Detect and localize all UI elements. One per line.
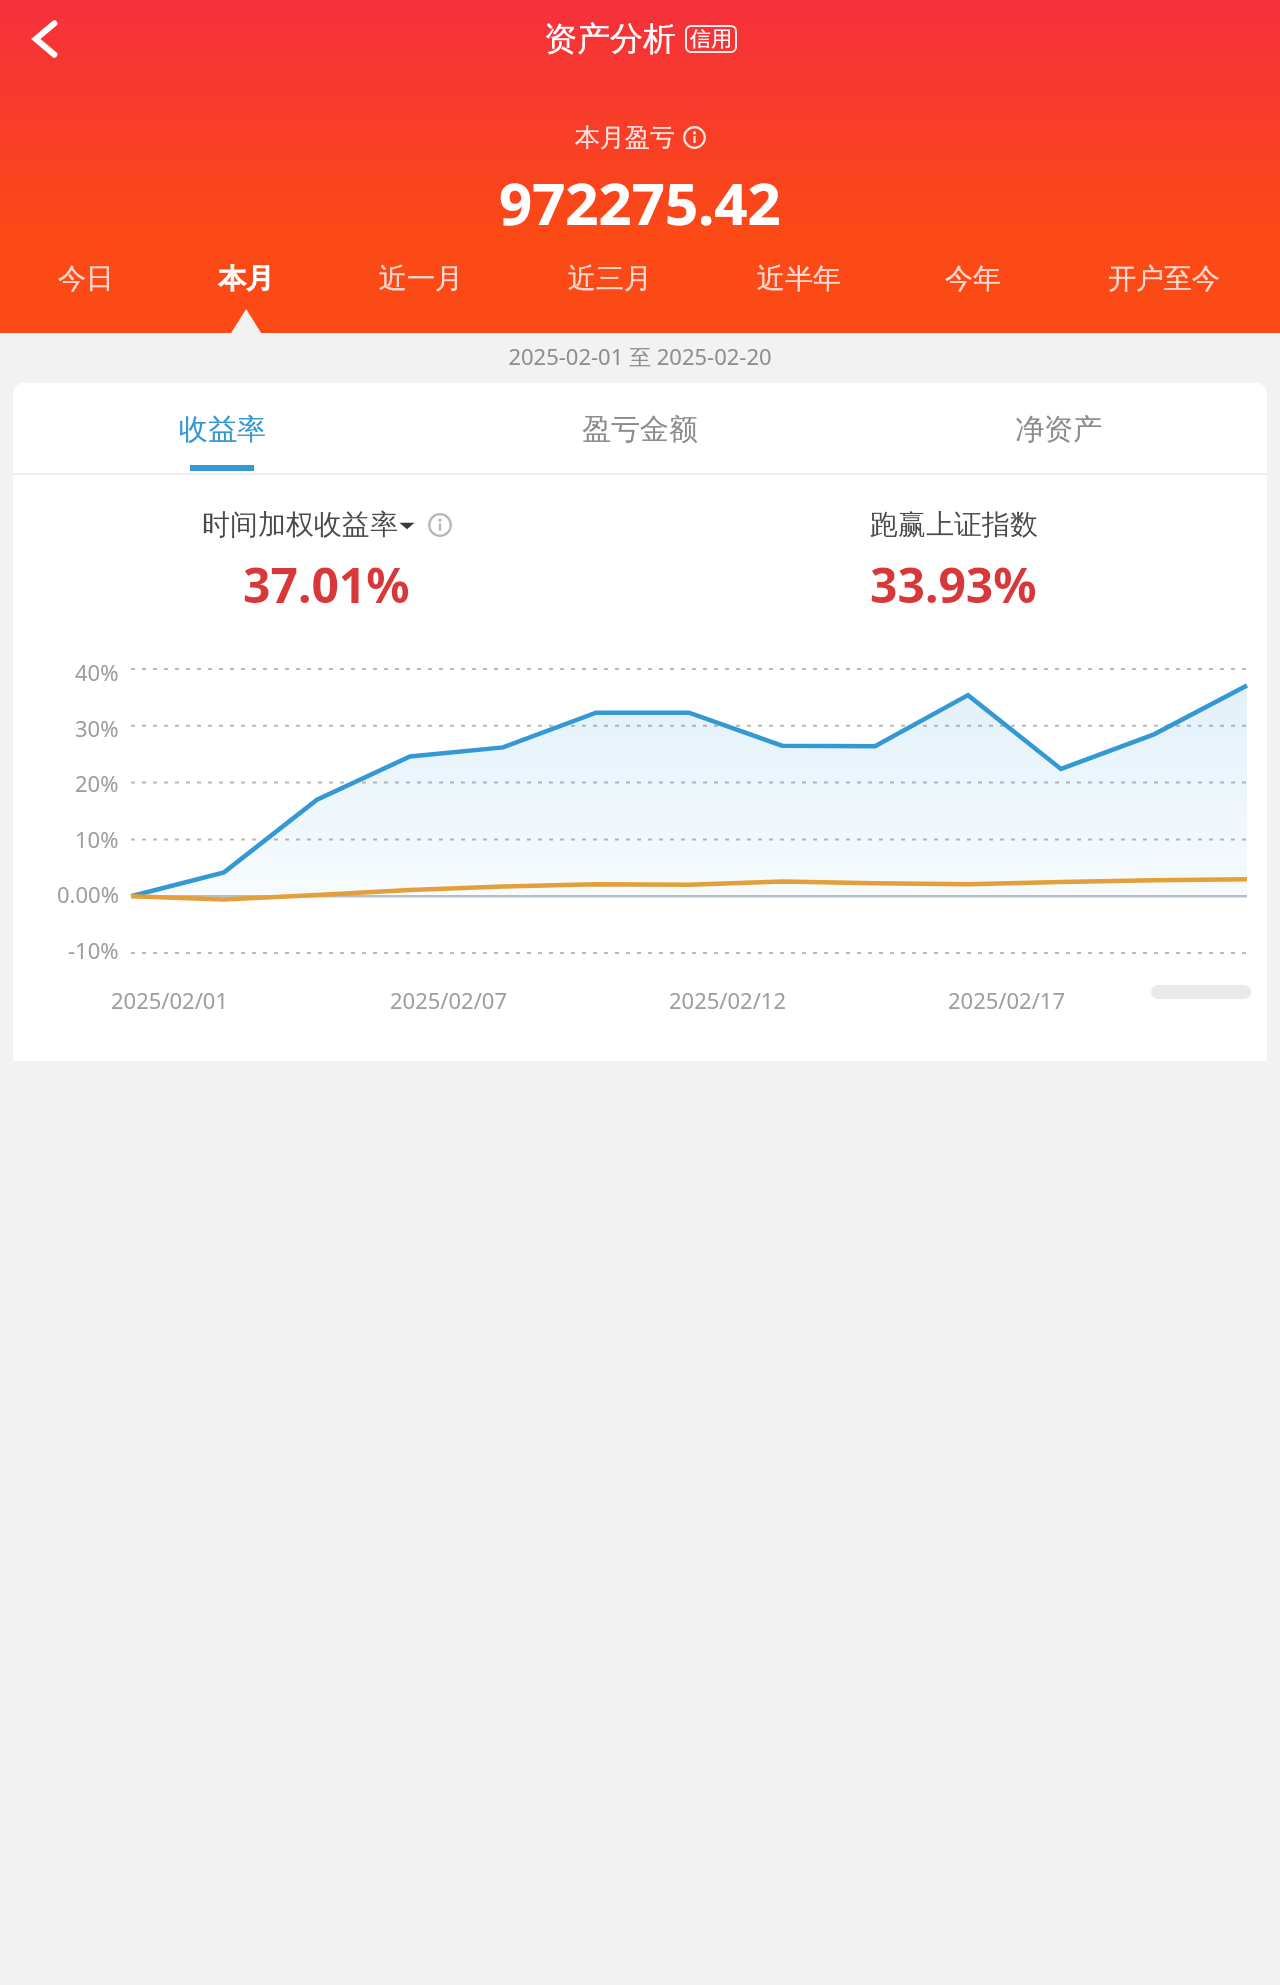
staticText: 2025/02/17 (948, 985, 1066, 1015)
staticText: 2025/02/01 (111, 985, 229, 1015)
button[interactable]: 本月盈亏 (571, 118, 710, 157)
staticText: 2025/02/07 (390, 985, 508, 1015)
staticText: 跑赢上证指数 (870, 507, 1038, 542)
staticText: 30% (75, 713, 119, 743)
button[interactable]: 净资产 (849, 383, 1267, 475)
staticText: 收益率 (179, 411, 266, 448)
staticText: 近一月 (379, 261, 463, 296)
button[interactable]: 近半年 (704, 261, 893, 333)
staticText: 本月 (218, 261, 274, 296)
staticText: 今日 (58, 261, 114, 296)
staticText: 40% (75, 657, 119, 687)
other: Info (683, 126, 706, 149)
staticText: 33.93% (870, 552, 1037, 617)
button[interactable]: Back (16, 9, 76, 69)
button[interactable]: 今年 (893, 261, 1053, 333)
staticText: 2025/02/12 (669, 985, 787, 1015)
staticText: 本月盈亏 (575, 122, 675, 153)
staticText: 近半年 (757, 261, 841, 296)
button[interactable]: 开户至今 (1053, 261, 1274, 333)
other: Info (428, 513, 452, 537)
button[interactable]: 收益率 (13, 383, 431, 475)
staticText: -10% (68, 935, 119, 965)
button[interactable]: 今日 (6, 261, 166, 333)
staticText: 资产分析 (544, 18, 676, 60)
staticText: 20% (75, 768, 119, 798)
button[interactable]: 盈亏金额 (431, 383, 849, 475)
button[interactable]: 本月 (166, 261, 326, 333)
staticText: 10% (75, 824, 119, 854)
staticText: 盈亏金额 (582, 411, 698, 448)
button[interactable]: 近三月 (515, 261, 704, 333)
staticText: 净资产 (1015, 411, 1102, 448)
staticText: 今年 (945, 261, 1001, 296)
staticText: 2025-02-01 至 2025-02-20 (0, 341, 1280, 371)
staticText: 37.01% (243, 552, 410, 617)
staticText: 972275.42 (499, 163, 781, 242)
button[interactable]: 时间加权收益率 (202, 507, 452, 542)
staticText: 近三月 (568, 261, 652, 296)
staticText: 信用 (690, 26, 732, 52)
staticText: 时间加权收益率 (202, 507, 398, 542)
button[interactable]: 近一月 (326, 261, 515, 333)
staticText: 开户至今 (1108, 261, 1220, 296)
staticText: 0.00% (57, 879, 119, 909)
